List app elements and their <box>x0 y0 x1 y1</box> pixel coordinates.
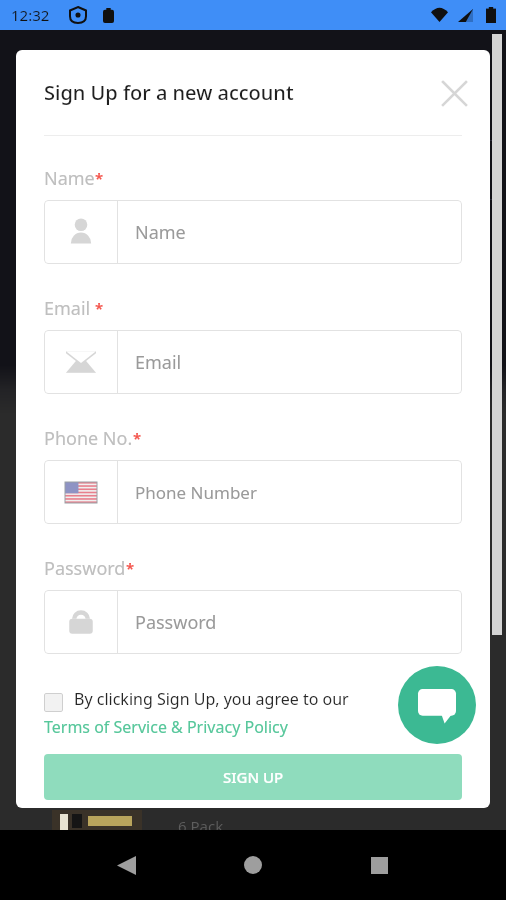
button[interactable]: Phone Number <box>44 460 462 524</box>
button[interactable]: Back <box>96 830 156 900</box>
staticText: Sign Up for a new account <box>44 79 294 106</box>
staticText: Phone No. <box>44 426 133 451</box>
button[interactable]: Recent apps <box>349 830 409 900</box>
staticText: 6 Pack <box>178 816 224 836</box>
staticText: Email <box>135 350 182 375</box>
staticText: Email <box>44 296 95 321</box>
button[interactable]: Open chat <box>398 666 476 744</box>
button[interactable]: By clicking Sign Up, you agree to our <box>44 688 476 710</box>
staticText: SIGN UP <box>223 767 284 787</box>
staticText: By clicking Sign Up, you agree to our <box>74 688 349 710</box>
button[interactable]: Name <box>44 200 462 264</box>
button[interactable]: Password <box>44 590 462 654</box>
staticText: Name <box>135 220 186 245</box>
staticText: Password <box>44 556 126 581</box>
staticText: Name <box>44 166 95 191</box>
staticText: Password <box>135 610 217 635</box>
button[interactable]: Close <box>432 71 476 115</box>
button[interactable]: Email <box>44 330 462 394</box>
button[interactable]: Terms of Service & Privacy Policy <box>44 716 288 738</box>
staticText: Phone Number <box>135 481 257 504</box>
staticText: * <box>126 558 135 578</box>
staticText: * <box>95 168 104 188</box>
staticText: 12:32 <box>11 5 50 25</box>
button[interactable]: SIGN UP <box>44 754 462 800</box>
button[interactable]: Home <box>223 830 283 900</box>
staticText: * <box>95 298 104 318</box>
staticText: * <box>133 428 142 448</box>
